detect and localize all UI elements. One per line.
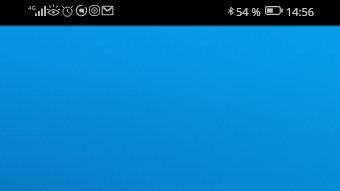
staticText: 54 %	[236, 4, 261, 19]
other: Battery 54 percent	[265, 6, 283, 15]
other: Bluetooth on	[227, 5, 235, 17]
other: Mobile signal strength	[35, 6, 46, 16]
other: Data saver	[88, 4, 101, 17]
other: Alarm set	[61, 4, 74, 17]
other: Unread message	[101, 4, 114, 17]
other: Eye comfort mode on	[47, 4, 60, 17]
staticText: 4G	[28, 4, 36, 12]
other: Email notification	[75, 4, 88, 17]
staticText: 14:56	[286, 4, 315, 19]
